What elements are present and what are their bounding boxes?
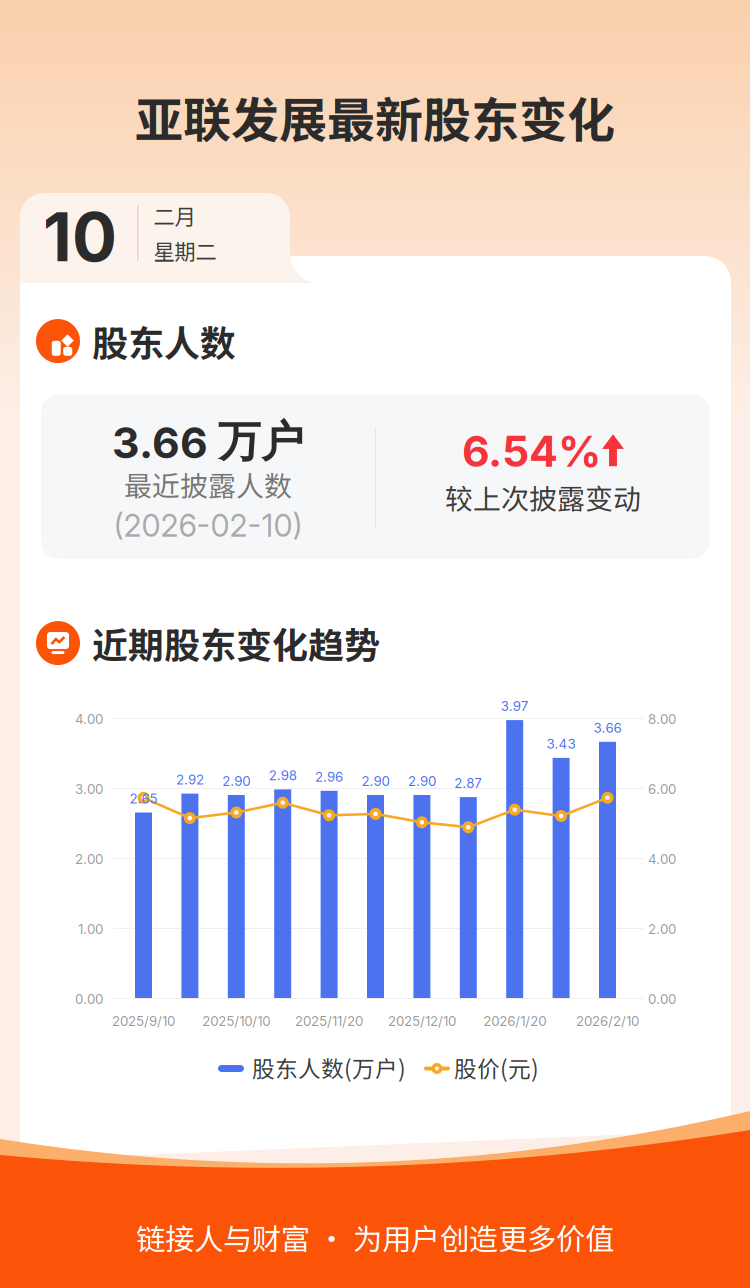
staticText: 链接人与财富 · 为用户创造更多价值 [136,1216,614,1258]
staticText: 4.00 [75,711,103,727]
staticText: 3.66 万户 [112,415,304,469]
staticText: 2.00 [75,851,103,867]
staticText: 2.90 [408,773,436,789]
staticText: 2.98 [269,767,297,783]
staticText: 2026/1/20 [483,1013,546,1029]
staticText: 近期股东变化趋势 [92,617,380,669]
staticText: 0.00 [75,991,103,1007]
staticText: 3.66 [593,720,621,736]
staticText: 2025/12/10 [388,1013,456,1029]
staticText: (2026-02-10) [113,507,302,544]
staticText: 星期二 [153,235,216,266]
staticText: 股东人数 [92,315,236,367]
staticText: 1.00 [78,921,103,937]
staticText: 2.00 [648,921,676,937]
staticText: 3.43 [547,736,576,752]
staticText: 2.90 [222,773,250,789]
staticText: 股价(元) [454,1051,539,1084]
staticText: 最近披露人数 [124,464,292,504]
staticText: 3.00 [75,781,103,797]
staticText: 10 [43,197,117,277]
staticText: 2025/10/10 [202,1013,270,1029]
staticText: 亚联发展最新股东变化 [135,82,615,151]
staticText: 2025/11/20 [295,1013,363,1029]
staticText: 较上次披露变动 [445,477,641,517]
staticText: 6.54% [462,425,601,477]
staticText: 2.65 [129,790,157,807]
staticText: 股东人数(万户) [252,1051,406,1084]
staticText: 2.90 [361,773,389,789]
staticText: 2026/2/10 [576,1013,639,1029]
staticText: 4.00 [648,851,676,867]
staticText: 2025/9/10 [112,1013,175,1029]
staticText: 6.00 [648,781,676,797]
staticText: 8.00 [648,711,676,727]
staticText: 0.00 [648,991,676,1007]
staticText: 2.87 [454,775,482,791]
staticText: 2.92 [176,772,204,788]
staticText: 二月 [153,200,195,231]
staticText: 3.97 [501,698,529,714]
staticText: 2.96 [315,769,343,785]
